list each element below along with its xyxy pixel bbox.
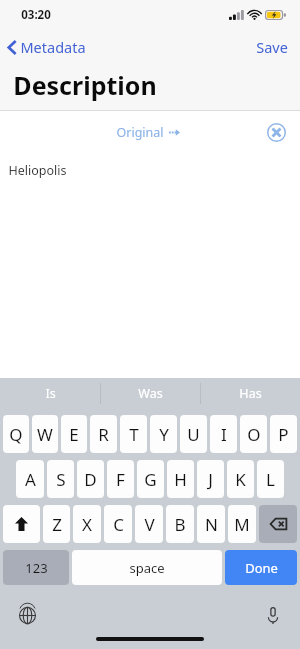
button[interactable]: F [107, 460, 134, 498]
staticText: Description [13, 68, 157, 102]
button[interactable]: Q [3, 415, 29, 453]
button[interactable]: Change keyboard [14, 602, 40, 628]
button[interactable]: K [227, 460, 254, 498]
button[interactable]: Metadata [0, 33, 94, 61]
button[interactable]: C [104, 505, 132, 543]
staticText: F [116, 468, 125, 491]
staticText: Save [256, 37, 288, 57]
button[interactable]: Z [43, 505, 70, 543]
staticText: E [69, 423, 79, 446]
staticText: I [221, 423, 227, 446]
staticText: Q [9, 423, 23, 446]
button[interactable]: P [270, 415, 297, 453]
button[interactable]: B [166, 505, 194, 543]
staticText: U [187, 423, 200, 446]
button[interactable]: Is [0, 378, 100, 409]
staticText: B [174, 513, 186, 536]
button[interactable]: V [135, 505, 163, 543]
button[interactable]: G [137, 460, 164, 498]
button[interactable]: Has [201, 378, 300, 409]
staticText: 03:20 [21, 7, 51, 23]
staticText: D [84, 468, 97, 491]
staticText: W [37, 423, 53, 446]
staticText: Has [239, 385, 262, 402]
staticText: S [56, 468, 66, 491]
button[interactable]: S [47, 460, 74, 498]
staticText: Original [116, 124, 164, 141]
staticText: Metadata [20, 37, 86, 57]
staticText: X [82, 513, 92, 536]
staticText: C [113, 513, 124, 536]
button[interactable]: Backspace [259, 505, 297, 543]
staticText: T [129, 423, 139, 446]
button[interactable]: Clear text [263, 119, 289, 145]
button[interactable]: T [120, 415, 147, 453]
button[interactable]: E [61, 415, 87, 453]
button[interactable]: R [90, 415, 117, 453]
staticText: Z [52, 513, 62, 536]
button[interactable]: Original [110, 120, 186, 145]
staticText: M [234, 513, 250, 536]
staticText: J [208, 468, 213, 491]
button[interactable]: M [228, 505, 256, 543]
staticText: Was [138, 385, 163, 402]
staticText: P [278, 423, 289, 446]
button[interactable]: N [197, 505, 225, 543]
staticText: O [247, 423, 261, 446]
button[interactable]: Shift [3, 505, 40, 543]
staticText: L [266, 468, 275, 491]
staticText: V [144, 513, 155, 536]
staticText: space [129, 559, 165, 577]
staticText: G [144, 468, 157, 491]
button[interactable]: Y [150, 415, 177, 453]
button[interactable]: Done [225, 550, 297, 585]
staticText: H [174, 468, 187, 491]
button[interactable]: H [167, 460, 194, 498]
button[interactable]: space [72, 550, 222, 585]
button[interactable]: A [16, 460, 44, 498]
button[interactable]: U [180, 415, 207, 453]
staticText: A [25, 468, 36, 491]
staticText: R [98, 423, 109, 446]
button[interactable]: L [257, 460, 284, 498]
button[interactable]: Was [101, 378, 200, 409]
button[interactable]: 123 [3, 550, 69, 585]
button[interactable]: X [73, 505, 101, 543]
button[interactable]: W [32, 415, 58, 453]
button[interactable]: Save [244, 32, 300, 62]
staticText: K [235, 468, 246, 491]
staticText: 123 [25, 559, 48, 577]
button[interactable]: J [197, 460, 224, 498]
staticText: Heliopolis [8, 162, 67, 179]
staticText: Y [159, 423, 169, 446]
button[interactable]: O [240, 415, 267, 453]
staticText: Done [245, 559, 278, 577]
staticText: N [205, 513, 218, 536]
button[interactable]: D [77, 460, 104, 498]
button[interactable]: I [210, 415, 237, 453]
staticText: Is [45, 385, 56, 402]
button[interactable]: Dictate [260, 602, 286, 628]
